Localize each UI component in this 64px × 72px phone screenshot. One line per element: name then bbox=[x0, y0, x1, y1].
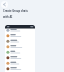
staticText: Create Group chats bbox=[3, 9, 28, 13]
button[interactable] bbox=[5, 25, 35, 72]
button[interactable]: Back bbox=[1, 1, 8, 8]
staticText: with AI bbox=[3, 15, 13, 19]
